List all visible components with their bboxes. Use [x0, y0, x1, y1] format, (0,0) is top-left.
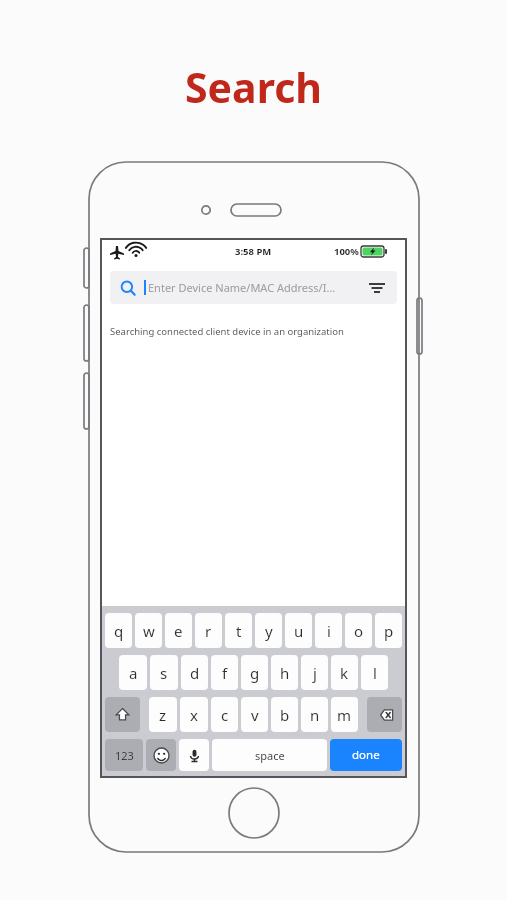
- staticText: Searching connected client device in an …: [110, 325, 344, 338]
- button[interactable]: y: [255, 613, 282, 648]
- staticText: t: [236, 621, 242, 641]
- button[interactable]: d: [181, 655, 208, 690]
- button[interactable]: j: [301, 655, 328, 690]
- button[interactable]: i: [315, 613, 342, 648]
- button[interactable]: x: [180, 697, 208, 732]
- staticText: l: [373, 663, 377, 683]
- button[interactable]: e: [165, 613, 192, 648]
- staticText: h: [280, 663, 290, 683]
- staticText: d: [190, 663, 200, 683]
- staticText: n: [310, 705, 320, 725]
- button[interactable]: 123: [105, 739, 143, 771]
- button[interactable]: r: [195, 613, 222, 648]
- staticText: x: [190, 705, 198, 725]
- button[interactable]: t: [225, 613, 252, 648]
- button[interactable]: a: [119, 655, 147, 690]
- button[interactable]: h: [271, 655, 298, 690]
- staticText: 3:58 PM: [235, 245, 272, 258]
- button[interactable]: m: [331, 697, 358, 732]
- staticText: i: [327, 621, 331, 641]
- staticText: j: [313, 663, 317, 683]
- button[interactable]: c: [211, 697, 238, 732]
- other: Search: [120, 280, 136, 296]
- button[interactable]: space: [212, 739, 327, 771]
- staticText: done: [352, 747, 380, 763]
- staticText: a: [129, 663, 138, 683]
- staticText: m: [337, 705, 352, 725]
- button[interactable]: u: [285, 613, 312, 648]
- button[interactable]: l: [361, 655, 388, 690]
- staticText: z: [159, 705, 167, 725]
- button[interactable]: done: [330, 739, 402, 771]
- staticText: k: [340, 663, 349, 683]
- staticText: y: [265, 621, 273, 641]
- staticText: 100%: [334, 245, 359, 258]
- staticText: r: [205, 621, 212, 641]
- staticText: e: [174, 621, 183, 641]
- button[interactable]: Search: [110, 271, 397, 304]
- staticText: 123: [115, 748, 134, 763]
- staticText: Enter Device Name/MAC Address/I...: [148, 280, 336, 295]
- button[interactable]: s: [150, 655, 178, 690]
- staticText: u: [294, 621, 304, 641]
- button[interactable]: n: [301, 697, 328, 732]
- button[interactable]: Emoji: [146, 739, 176, 771]
- staticText: p: [384, 621, 394, 641]
- staticText: Search: [185, 59, 322, 115]
- button[interactable]: v: [241, 697, 268, 732]
- button[interactable]: k: [331, 655, 358, 690]
- staticText: b: [280, 705, 290, 725]
- staticText: space: [255, 748, 285, 763]
- button[interactable]: w: [135, 613, 162, 648]
- staticText: v: [251, 705, 259, 725]
- button[interactable]: o: [345, 613, 372, 648]
- staticText: g: [250, 663, 260, 683]
- button[interactable]: z: [149, 697, 177, 732]
- button[interactable]: Backspace: [367, 697, 402, 732]
- staticText: w: [143, 621, 155, 641]
- button[interactable]: Shift: [105, 697, 140, 732]
- staticText: s: [160, 663, 168, 683]
- button[interactable]: Dictation: [179, 739, 209, 771]
- staticText: c: [221, 705, 229, 725]
- button[interactable]: g: [241, 655, 268, 690]
- button[interactable]: f: [211, 655, 238, 690]
- button[interactable]: p: [375, 613, 402, 648]
- staticText: o: [354, 621, 364, 641]
- button[interactable]: Filter: [367, 278, 387, 298]
- button[interactable]: b: [271, 697, 298, 732]
- staticText: f: [222, 663, 228, 683]
- staticText: q: [114, 621, 124, 641]
- button[interactable]: q: [105, 613, 132, 648]
